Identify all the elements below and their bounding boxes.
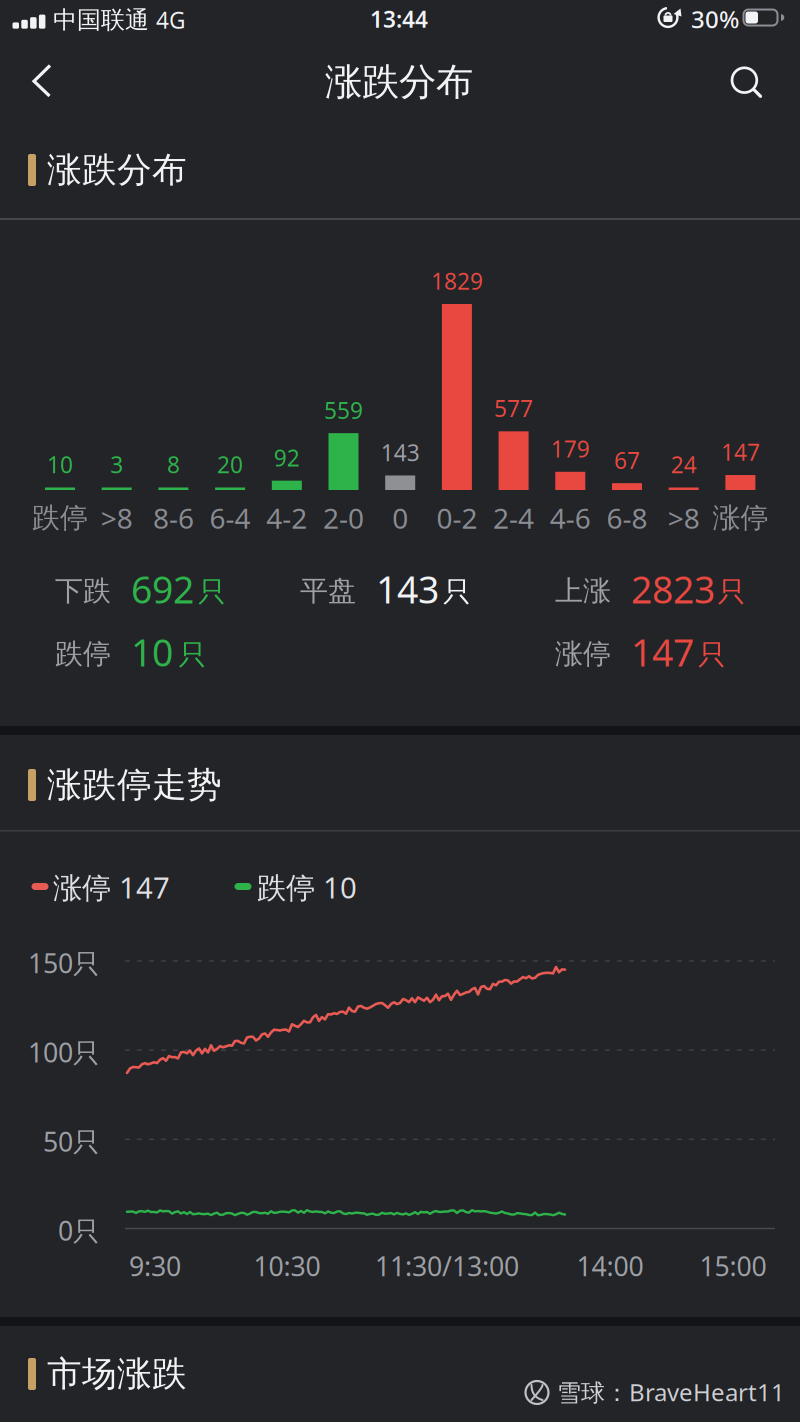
staticText: >8 [101,499,133,537]
staticText: 92 [274,443,300,473]
staticText: 9:30 [129,1248,181,1284]
staticText: 143 [381,437,420,467]
staticText: 0-2 [436,499,477,537]
staticText: 只 [198,575,226,609]
staticText: 11:30/13:00 [375,1248,519,1284]
staticText: 8-6 [153,499,194,537]
staticText: 涨停 [555,637,611,671]
staticText: 8 [167,449,180,479]
staticText: 跌停 [55,637,111,671]
staticText: 跌停 [32,501,88,535]
staticText: 24 [671,449,697,479]
staticText: 跌停 10 [257,867,357,906]
staticText: 577 [494,393,533,423]
staticText: 0只 [58,1213,100,1248]
staticText: 0 [392,499,408,537]
staticText: 15:00 [699,1248,766,1284]
staticText: 10:30 [253,1248,320,1284]
staticText: 上涨 [555,574,611,608]
staticText: 6-4 [210,499,251,537]
staticText: 涨跌分布 [325,59,473,105]
staticText: 2-0 [323,499,364,537]
staticText: 4-2 [266,499,307,537]
staticText: 147 [721,437,760,467]
staticText: 150只 [28,945,100,981]
staticText: >8 [668,499,700,537]
staticText: 143 [376,564,439,614]
staticText: 1829 [431,266,483,296]
staticText: 559 [324,395,363,425]
staticText: 20 [217,449,243,479]
staticText: 30% [691,3,739,35]
staticText: 67 [614,445,640,475]
staticText: 涨停 [712,501,768,535]
button[interactable]: Search [710,44,800,122]
button[interactable]: Back [0,44,76,122]
staticText: 3 [110,449,123,479]
staticText: 平盘 [300,574,356,608]
staticText: 只 [443,575,471,609]
staticText: 14:00 [576,1248,643,1284]
staticText: 2-4 [493,499,534,537]
staticText: 市场涨跌 [47,1353,187,1395]
staticText: 只 [718,575,746,609]
staticText: 179 [551,434,590,464]
staticText: 692 [131,564,194,614]
staticText: 涨停 147 [53,867,170,906]
staticText: 147 [631,627,694,677]
staticText: 下跌 [55,574,111,608]
staticText: 10 [131,627,173,677]
staticText: 50只 [43,1124,100,1159]
staticText: 2823 [631,564,715,614]
staticText: 涨跌分布 [47,149,187,191]
staticText: 4-6 [550,499,591,537]
staticText: 雪球：BraveHeart11 [557,1376,785,1408]
staticText: 10 [47,449,73,479]
staticText: 6-8 [606,499,647,537]
staticText: 只 [178,638,206,672]
staticText: 100只 [28,1034,100,1070]
staticText: 只 [698,638,726,672]
staticText: 4G [156,5,186,35]
staticText: 涨跌停走势 [47,764,222,806]
staticText: 13:44 [370,4,428,34]
staticText: 中国联通 [53,5,149,35]
